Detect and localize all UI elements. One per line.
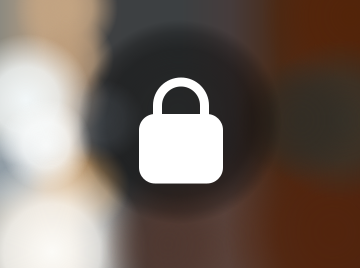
button[interactable]: Unlock	[0, 0, 360, 268]
